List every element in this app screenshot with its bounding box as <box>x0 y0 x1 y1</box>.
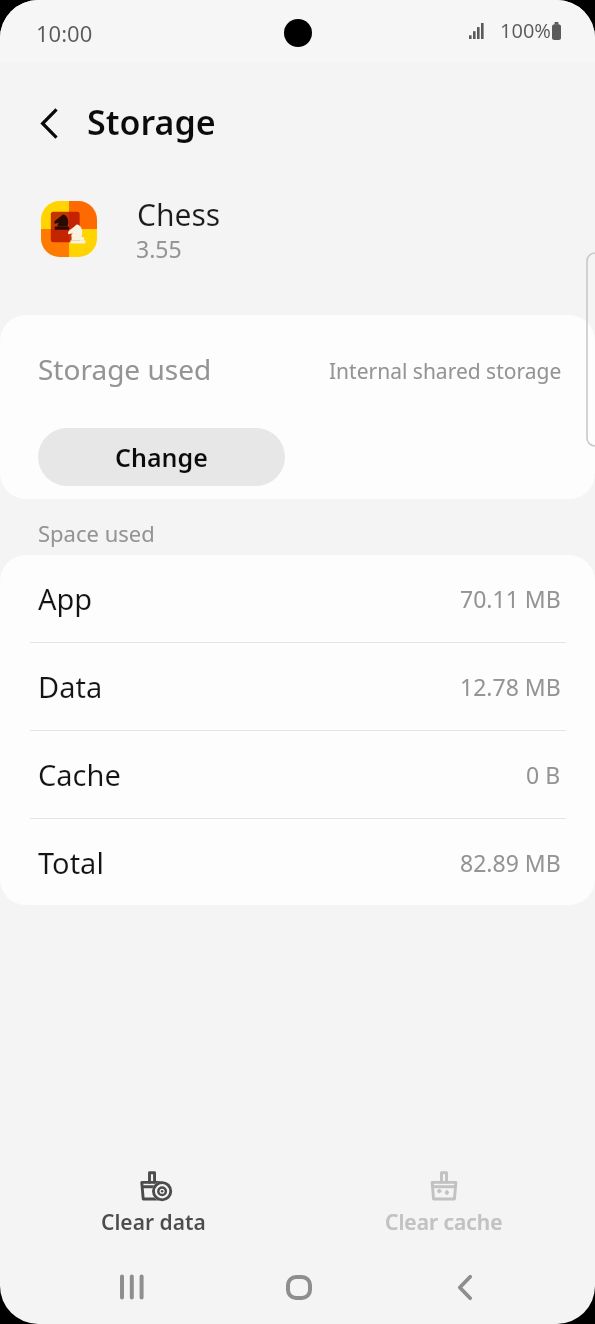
staticText: Cache <box>38 755 121 794</box>
staticText: Total <box>38 843 104 882</box>
button[interactable]: Clear cache <box>348 1168 539 1260</box>
staticText: Space used <box>38 518 155 548</box>
staticText: 70.11 MB <box>460 583 561 614</box>
staticText: Chess <box>137 194 221 235</box>
staticText: App <box>38 579 93 618</box>
staticText: 3.55 <box>136 233 182 264</box>
button[interactable]: Home <box>267 1261 331 1313</box>
button[interactable]: Navigate up <box>25 99 73 147</box>
button[interactable]: Chess app info <box>0 186 595 272</box>
staticText: Clear cache <box>385 1208 503 1237</box>
staticText: 0 B <box>526 759 561 790</box>
staticText: 10:00 <box>36 18 93 48</box>
button[interactable]: App <box>0 555 595 642</box>
staticText: Internal shared storage <box>329 357 562 386</box>
button[interactable]: Data <box>0 643 595 730</box>
button[interactable]: Recent apps <box>100 1261 164 1313</box>
staticText: Change <box>115 440 208 474</box>
button[interactable]: Clear data <box>58 1168 249 1260</box>
button[interactable]: Cache <box>0 731 595 818</box>
staticText: Clear data <box>101 1208 206 1237</box>
staticText: Storage used <box>38 350 212 388</box>
staticText: Data <box>38 667 103 706</box>
staticText: Storage <box>87 99 216 145</box>
button[interactable]: Back <box>433 1261 497 1313</box>
staticText: 82.89 MB <box>460 847 561 878</box>
staticText: 12.78 MB <box>460 671 561 702</box>
button[interactable]: Change <box>38 428 285 486</box>
staticText: 100% <box>500 17 551 44</box>
button[interactable]: Total <box>0 819 595 905</box>
